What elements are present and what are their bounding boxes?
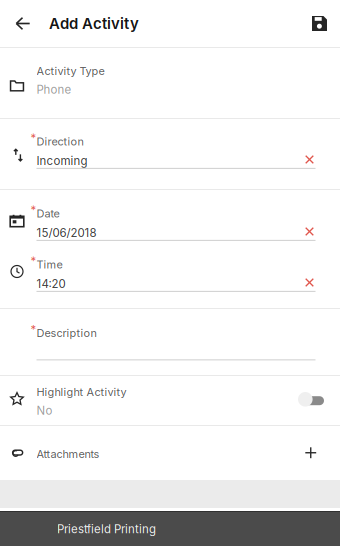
button[interactable]: Highlight Activity	[0, 376, 340, 425]
staticText: Priestfield Printing	[57, 522, 156, 536]
staticText: Add Activity	[49, 14, 139, 33]
button[interactable]: Save	[298, 0, 340, 47]
staticText: No	[36, 404, 52, 418]
button[interactable]: *	[0, 309, 340, 375]
staticText: Date	[36, 207, 59, 220]
staticText: Description	[36, 326, 96, 340]
button[interactable]: Attachments	[0, 426, 340, 480]
staticText: *	[30, 131, 36, 145]
staticText: Activity Type	[36, 64, 104, 78]
button[interactable]: *	[0, 119, 340, 189]
staticText: 15/06/2018	[36, 226, 96, 240]
button[interactable]: Activity Type	[0, 48, 340, 118]
staticText: Time	[36, 258, 62, 271]
staticText: *	[30, 203, 36, 217]
staticText: Phone	[36, 83, 71, 97]
staticText: Attachments	[36, 447, 99, 461]
button[interactable]: *	[0, 190, 340, 241]
button[interactable]: Back	[0, 0, 44, 47]
button[interactable]: Add Activity	[44, 0, 149, 47]
staticText: Highlight Activity	[36, 385, 126, 399]
staticText: *	[30, 323, 36, 337]
staticText: *	[30, 254, 36, 268]
staticText: 14:20	[36, 277, 65, 291]
staticText: Incoming	[36, 154, 87, 168]
staticText: Direction	[36, 135, 83, 148]
button[interactable]: *	[0, 241, 340, 292]
